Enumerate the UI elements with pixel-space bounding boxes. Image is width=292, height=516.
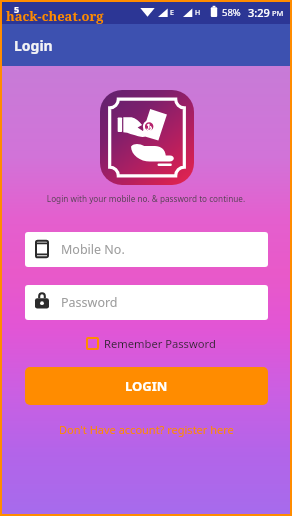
button[interactable]: Remember Password bbox=[84, 334, 218, 353]
staticText: H bbox=[195, 8, 201, 18]
staticText: Login bbox=[14, 36, 53, 55]
staticText: E bbox=[170, 8, 174, 18]
staticText: hack-cheat.org bbox=[6, 7, 104, 25]
button[interactable]: Mobile No. bbox=[25, 232, 268, 267]
button[interactable]: Password bbox=[25, 285, 268, 320]
staticText: Mobile No. bbox=[61, 241, 125, 258]
staticText: 3:29 bbox=[248, 5, 270, 20]
button[interactable]: Don't Have account? register here bbox=[59, 422, 234, 437]
staticText: Login with your mobile no. & password to… bbox=[2, 193, 290, 204]
staticText: Password bbox=[61, 294, 118, 311]
staticText: Remember Password bbox=[104, 336, 216, 351]
staticText: LOGIN bbox=[125, 377, 168, 395]
staticText: 58% bbox=[222, 6, 241, 19]
button[interactable]: LOGIN bbox=[25, 367, 268, 405]
staticText: PM bbox=[272, 8, 284, 18]
staticText: 5 bbox=[14, 3, 20, 15]
